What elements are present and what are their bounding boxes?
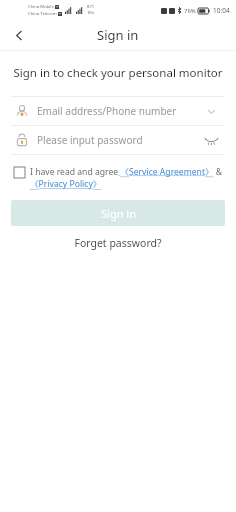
staticText: 10:04: [213, 6, 230, 15]
staticText: China Mobile: [28, 4, 54, 10]
staticText: B/s: [88, 10, 95, 16]
button[interactable]: Back: [8, 24, 30, 46]
staticText: Please input password: [37, 133, 203, 147]
staticText: 76%: [184, 7, 196, 15]
button[interactable]: Email address/Phone number: [11, 97, 225, 125]
staticText: Sign in: [97, 26, 139, 44]
button[interactable]: Sign in: [11, 200, 225, 226]
staticText: Sign in: [101, 206, 136, 221]
button[interactable]: Agree to terms: [14, 167, 25, 178]
staticText: Email address/Phone number: [37, 104, 203, 118]
button[interactable]: I have read and agree 《Service Agreement…: [30, 166, 226, 190]
button[interactable]: Show password: [203, 132, 219, 148]
staticText: 871: [87, 4, 95, 10]
button[interactable]: Show accounts: [203, 103, 219, 119]
button[interactable]: Forget password?: [0, 236, 236, 250]
button[interactable]: Please input password: [11, 126, 225, 154]
staticText: Sign in to check your personal monitor: [0, 65, 236, 81]
staticText: China Telecom: [28, 11, 57, 17]
